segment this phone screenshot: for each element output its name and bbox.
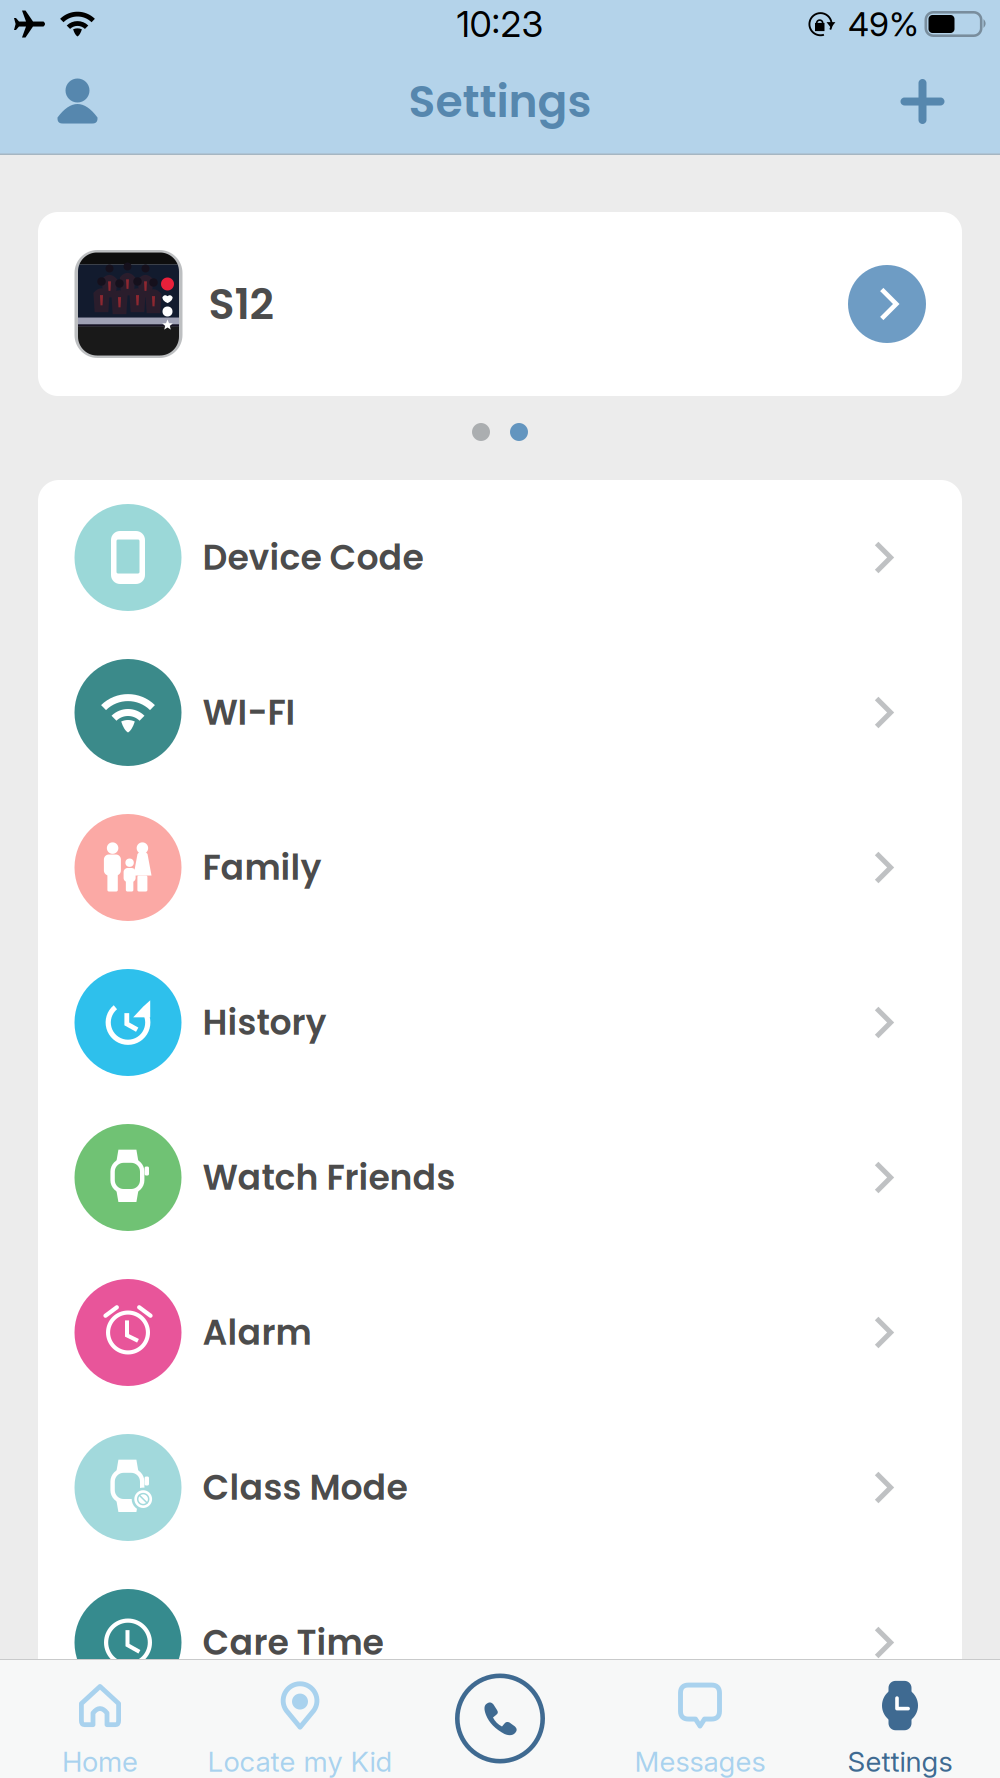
staticText: Alarm [202,1308,311,1357]
button[interactable]: Profile [0,48,155,155]
staticText: S12 [208,274,273,334]
staticText: Settings [847,1745,952,1778]
staticText: Settings [408,71,591,132]
button[interactable]: History [38,945,962,1100]
button[interactable]: Call [400,1659,600,1778]
button[interactable]: Device Code [38,480,962,635]
button[interactable]: Alarm [38,1255,962,1410]
staticText: 49% [848,4,919,44]
staticText: Family [202,843,321,892]
button[interactable]: Messages [600,1659,800,1778]
staticText: Home [62,1745,138,1778]
button[interactable]: Watch Friends [38,1100,962,1255]
button[interactable]: Locate my Kid [200,1659,400,1778]
staticText: Watch Friends [202,1153,455,1202]
staticText: Device Code [202,533,423,582]
button[interactable]: Care Time [38,1565,962,1720]
button[interactable]: Class Mode [38,1410,962,1565]
button[interactable]: Settings [800,1659,1000,1778]
button[interactable]: S12 [38,212,962,396]
button[interactable]: Family [38,790,962,945]
staticText: Locate my Kid [207,1745,392,1778]
staticText: Class Mode [202,1463,407,1512]
staticText: 10:23 [456,2,543,46]
staticText: Messages [634,1745,765,1778]
staticText: History [202,998,326,1047]
button[interactable]: Add device [845,48,1000,155]
staticText: WI-FI [202,688,295,737]
button[interactable]: WI-FI [38,635,962,790]
staticText: Care Time [202,1618,383,1667]
button[interactable]: Home [0,1659,200,1778]
